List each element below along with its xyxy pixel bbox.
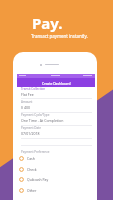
button[interactable]: Payment Date [21, 126, 92, 139]
button[interactable]: Payment Cycle/Type [21, 113, 92, 126]
staticText: $ 400 [21, 105, 30, 110]
staticText: Flat Fee [21, 92, 34, 97]
button[interactable]: Check [19, 164, 90, 174]
button[interactable]: Other [19, 185, 90, 195]
staticText: Cash [27, 156, 35, 161]
staticText: Other [27, 188, 37, 193]
button[interactable]: Quikcash Pay [19, 174, 90, 184]
button[interactable]: Create Dashboard [17, 78, 95, 87]
staticText: Transact payment instantly. [31, 33, 88, 39]
staticText: Pay. [32, 13, 63, 33]
staticText: One Time - At Completion [21, 118, 64, 123]
staticText: Payment Preference [21, 150, 50, 154]
staticText: Check [27, 167, 37, 172]
button[interactable]: Cash [19, 153, 90, 163]
button[interactable]: Transit Collection [21, 87, 92, 100]
button[interactable]: Amount [21, 100, 92, 113]
staticText: 07/01/2018 [21, 131, 40, 136]
staticText: Create Dashboard [42, 81, 71, 85]
staticText: Transit Collection [21, 87, 46, 91]
staticText: Quikcash Pay [27, 177, 49, 182]
staticText: Payment Date [21, 126, 41, 130]
staticText: Payment Cycle/Type [21, 113, 50, 117]
staticText: Amount [21, 100, 33, 104]
